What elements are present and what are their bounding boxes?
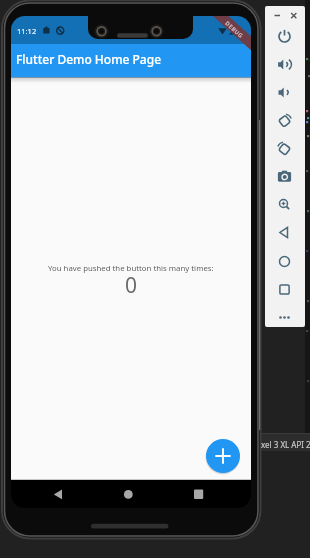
button[interactable] — [271, 135, 298, 162]
button[interactable] — [271, 219, 298, 246]
button[interactable] — [271, 79, 298, 106]
staticText: DEBUG — [224, 19, 245, 39]
button[interactable] — [271, 107, 298, 134]
staticText: 11:12 — [17, 26, 37, 36]
button[interactable] — [271, 304, 298, 331]
button[interactable] — [206, 439, 240, 473]
staticText: You have pushed the button this many tim… — [48, 263, 214, 274]
button[interactable] — [44, 482, 72, 507]
button[interactable] — [271, 163, 298, 190]
button[interactable] — [184, 482, 212, 507]
button[interactable] — [271, 23, 298, 50]
button[interactable] — [271, 276, 298, 303]
button[interactable] — [114, 482, 142, 507]
button[interactable] — [271, 191, 298, 218]
staticText: 0 — [125, 271, 138, 297]
button[interactable] — [271, 51, 298, 78]
staticText: Flutter Demo Home Page — [16, 51, 162, 67]
button[interactable] — [271, 248, 298, 275]
staticText: xel 3 XL API 2 — [261, 439, 310, 450]
